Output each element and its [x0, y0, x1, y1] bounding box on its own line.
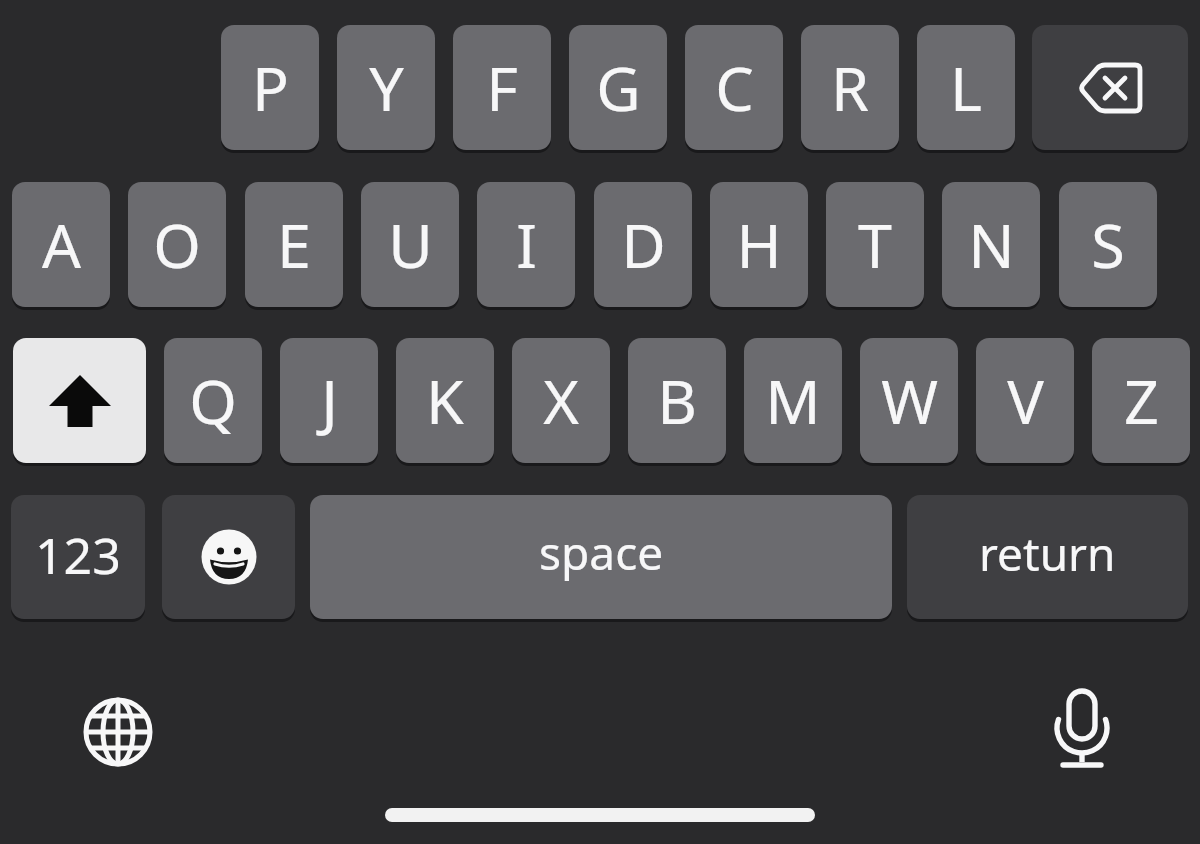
button[interactable]: Q [164, 338, 262, 463]
button[interactable]: P [221, 25, 319, 150]
button[interactable]: G [569, 25, 667, 150]
button[interactable]: R [801, 25, 899, 150]
staticText: S [1091, 203, 1125, 286]
staticText: J [321, 359, 338, 442]
button[interactable]: U [361, 182, 459, 307]
staticText: K [426, 359, 464, 442]
staticText: C [715, 46, 754, 129]
button[interactable]: H [710, 182, 808, 307]
button[interactable]: V [976, 338, 1074, 463]
button[interactable]: W [860, 338, 958, 463]
staticText: 123 [35, 521, 121, 589]
button[interactable]: Y [337, 25, 435, 150]
button[interactable]: L [917, 25, 1015, 150]
button[interactable] [80, 694, 156, 770]
button[interactable]: T [826, 182, 924, 307]
staticText: X [543, 359, 579, 442]
button[interactable]: space [310, 495, 892, 619]
staticText: W [881, 359, 938, 442]
staticText: Q [189, 359, 237, 442]
button[interactable]: N [942, 182, 1040, 307]
staticText: T [858, 203, 892, 286]
staticText: Z [1124, 359, 1159, 442]
staticText: E [277, 203, 311, 286]
button[interactable]: return [907, 495, 1188, 619]
staticText: I [516, 203, 537, 286]
staticText: L [950, 46, 982, 129]
staticText: Y [369, 46, 404, 129]
staticText: A [42, 203, 81, 286]
button[interactable] [162, 495, 295, 619]
button[interactable] [1044, 680, 1120, 776]
button[interactable]: M [744, 338, 842, 463]
button[interactable]: D [594, 182, 692, 307]
staticText: B [657, 359, 697, 442]
button[interactable]: O [128, 182, 226, 307]
staticText: P [252, 46, 289, 129]
staticText: N [968, 203, 1015, 286]
button[interactable]: X [512, 338, 610, 463]
staticText: space [539, 521, 664, 584]
staticText: M [765, 359, 821, 442]
button[interactable]: K [396, 338, 494, 463]
button[interactable]: A [12, 182, 110, 307]
button[interactable]: Z [1092, 338, 1190, 463]
button[interactable]: B [628, 338, 726, 463]
staticText: U [388, 203, 433, 286]
staticText: return [979, 522, 1116, 585]
button[interactable]: F [453, 25, 551, 150]
button[interactable]: E [245, 182, 343, 307]
staticText: H [736, 203, 782, 286]
staticText: G [596, 46, 641, 129]
button[interactable]: I [477, 182, 575, 307]
button[interactable]: C [685, 25, 783, 150]
staticText: O [153, 203, 201, 286]
staticText: R [831, 46, 869, 129]
staticText: F [486, 46, 518, 129]
button[interactable]: S [1059, 182, 1157, 307]
button[interactable]: 123 [11, 495, 145, 619]
button[interactable] [1032, 25, 1188, 150]
staticText: V [1007, 359, 1044, 442]
button[interactable]: J [280, 338, 378, 463]
button[interactable] [13, 338, 146, 463]
staticText: D [621, 203, 666, 286]
